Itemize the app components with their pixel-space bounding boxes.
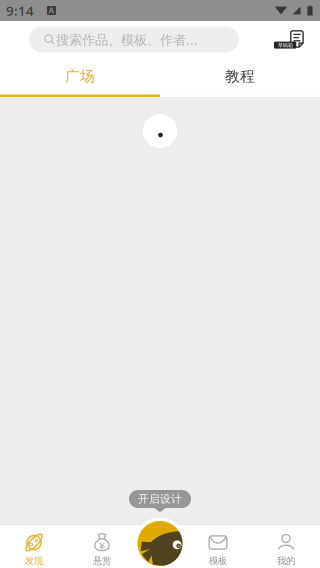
- staticText: 发现: [25, 555, 43, 567]
- button[interactable]: 草稿箱: [274, 30, 304, 49]
- button[interactable]: 悬赏: [68, 525, 136, 568]
- staticText: 开启设计: [138, 492, 182, 505]
- staticText: A: [48, 5, 54, 16]
- button[interactable]: 模板: [184, 525, 252, 568]
- staticText: 模板: [209, 555, 227, 567]
- button[interactable]: 发现: [0, 525, 68, 568]
- staticText: 草稿箱: [278, 42, 293, 48]
- staticText: 搜索作品、模板、作者...: [56, 31, 198, 48]
- staticText: 我的: [277, 555, 295, 567]
- staticText: 9:14: [6, 2, 34, 19]
- button[interactable]: 教程: [160, 58, 320, 94]
- button[interactable]: 我的: [252, 525, 320, 568]
- button[interactable]: 开启设计: [134, 517, 186, 568]
- staticText: 悬赏: [93, 555, 111, 567]
- staticText: 广场: [65, 67, 95, 85]
- staticText: 教程: [225, 67, 255, 85]
- button[interactable]: 搜索作品、模板、作者...: [29, 26, 239, 52]
- button[interactable]: 广场: [0, 58, 160, 94]
